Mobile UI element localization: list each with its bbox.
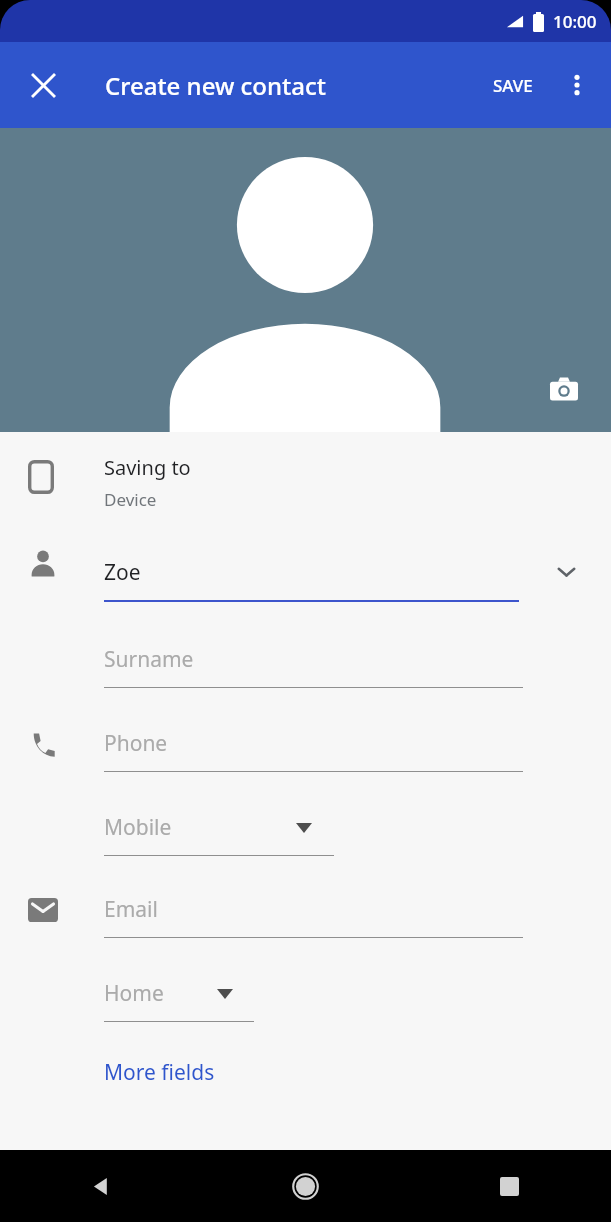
staticText: Device — [104, 488, 157, 511]
button[interactable]: SAVE — [483, 64, 543, 107]
button[interactable]: Close — [17, 59, 69, 111]
button[interactable]: Mobile — [104, 804, 334, 856]
button[interactable]: Email — [104, 886, 523, 938]
staticText: Phone — [104, 729, 168, 758]
staticText: Saving to — [104, 454, 191, 481]
button[interactable]: Back — [0, 1150, 203, 1222]
button[interactable]: More options — [551, 59, 603, 111]
button[interactable]: Home — [104, 970, 254, 1022]
staticText: Create new contact — [105, 69, 326, 102]
button[interactable]: Contact photo — [0, 128, 611, 432]
staticText: SAVE — [493, 74, 533, 97]
staticText: Surname — [104, 645, 194, 674]
button[interactable]: Surname — [104, 636, 523, 688]
staticText: Home — [104, 979, 164, 1008]
button[interactable]: Zoe — [104, 548, 519, 602]
button[interactable]: Recent apps — [407, 1150, 611, 1222]
staticText: 10:00 — [553, 10, 597, 33]
button[interactable]: Home — [203, 1150, 407, 1222]
button[interactable]: Expand name fields — [543, 548, 589, 594]
staticText: More fields — [104, 1058, 215, 1087]
staticText: Zoe — [104, 558, 141, 587]
staticText: Email — [104, 895, 158, 924]
button[interactable]: Change photo — [541, 366, 587, 412]
staticText: Mobile — [104, 813, 172, 842]
button[interactable]: More fields — [90, 1048, 229, 1097]
button[interactable]: Phone — [104, 720, 523, 772]
button[interactable]: Saving to — [0, 448, 611, 528]
